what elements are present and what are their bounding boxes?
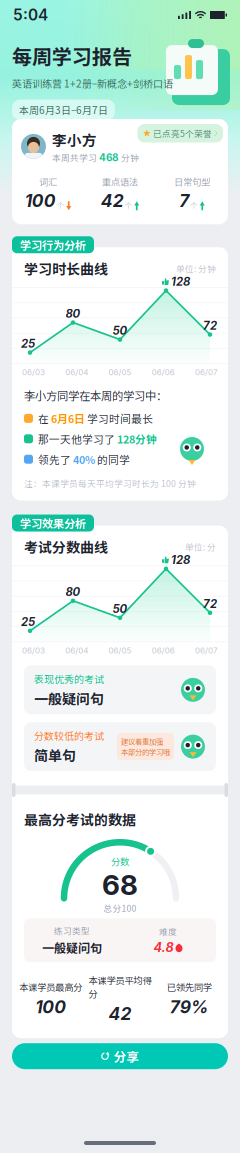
staticText: 英语训练营 1+2册–新概念+剑桥口语 xyxy=(12,76,173,90)
staticText: 06/05 xyxy=(108,367,131,377)
staticText: 学习时间最长 xyxy=(85,411,153,426)
staticText: 总分100 xyxy=(103,902,136,914)
staticText: 42 xyxy=(108,1003,131,1024)
staticText: 468 xyxy=(99,151,119,164)
staticText: 40% xyxy=(73,451,95,467)
staticText: 单位: 分钟 xyxy=(176,262,216,275)
staticText: 06/04 xyxy=(65,646,88,655)
staticText: 分数 xyxy=(111,854,129,868)
staticText: 25 xyxy=(21,337,35,350)
staticText: 日常句型 xyxy=(174,175,210,188)
staticText: 个 xyxy=(125,199,132,210)
staticText: 128分钟 xyxy=(117,431,157,446)
staticText: 学习行为分析 xyxy=(20,237,86,253)
staticText: 考试分数曲线 xyxy=(24,536,108,557)
staticText: 重点语法 xyxy=(102,175,138,188)
staticText: 最高分考试的数据 xyxy=(24,809,136,829)
staticText: 100 xyxy=(35,996,66,1017)
staticText: 领先了 xyxy=(38,451,73,467)
staticText: 06/03 xyxy=(22,367,45,377)
staticText: 4.8 xyxy=(153,940,173,955)
staticText: 本周共学习 xyxy=(52,151,97,164)
staticText: 分数较低的考试 xyxy=(34,728,104,743)
staticText: 06/07 xyxy=(195,367,218,377)
staticText: 68 xyxy=(102,868,138,902)
staticText: 06/06 xyxy=(152,646,175,655)
staticText: 7 xyxy=(179,190,189,211)
staticText: 表现优秀的考试 xyxy=(34,671,104,686)
staticText: 学习效果分析 xyxy=(20,515,86,531)
staticText: 100 xyxy=(25,190,56,211)
staticText: 50 xyxy=(112,602,127,616)
staticText: 难度 xyxy=(159,925,177,938)
staticText: 那一天他学习了 xyxy=(38,431,117,446)
staticText: 学习时长曲线 xyxy=(24,258,108,279)
staticText: 5:04 xyxy=(13,6,48,24)
staticText: 80 xyxy=(65,307,80,320)
staticText: 06/06 xyxy=(152,367,175,377)
staticText: 注：本课学员每天平均学习时长为 100 分钟 xyxy=(24,477,196,489)
staticText: 72 xyxy=(203,319,217,332)
staticText: 06/07 xyxy=(195,646,218,655)
staticText: 已领先同学 xyxy=(167,980,212,993)
staticText: 在 xyxy=(38,411,51,426)
staticText: 6月6日 xyxy=(51,411,85,426)
staticText: 词汇 xyxy=(39,175,57,188)
staticText: 06/04 xyxy=(65,367,88,377)
staticText: 80 xyxy=(65,585,80,599)
staticText: 分享 xyxy=(113,1047,139,1065)
staticText: 本部分的学习哦 xyxy=(121,747,170,757)
staticText: 72 xyxy=(203,597,217,611)
button[interactable]: 分享 xyxy=(0,1043,240,1069)
staticText: 个 xyxy=(57,199,64,210)
staticText: 李小方 xyxy=(52,129,97,150)
staticText: 一般疑问句 xyxy=(42,939,102,956)
staticText: 25 xyxy=(21,615,35,629)
staticText: 06/03 xyxy=(22,646,45,655)
staticText: 128 xyxy=(171,275,190,288)
staticText: 建议着重加强 xyxy=(121,736,163,747)
staticText: 已点亮5个荣誉 xyxy=(153,127,212,139)
staticText: 本课学员平均得分 xyxy=(88,973,151,1000)
staticText: 42 xyxy=(101,190,124,211)
staticText: 本课学员最高分 xyxy=(19,980,82,993)
staticText: 06/05 xyxy=(108,646,131,655)
staticText: 练习类型 xyxy=(54,924,90,937)
staticText: 79% xyxy=(170,996,209,1017)
staticText: 128 xyxy=(171,553,190,567)
staticText: 的同学 xyxy=(95,451,130,467)
staticText: 本周6月3日–6月7日 xyxy=(19,102,108,117)
staticText: 一般疑问句 xyxy=(34,688,104,708)
staticText: 分钟 xyxy=(121,151,139,164)
staticText: 50 xyxy=(112,324,127,337)
staticText: 简单句 xyxy=(34,745,76,765)
staticText: 单位: 分 xyxy=(185,540,216,553)
staticText: 李小方同学在本周的学习中： xyxy=(24,387,167,404)
staticText: 每周学习报告 xyxy=(12,41,132,70)
staticText: 个 xyxy=(190,199,197,210)
button[interactable]: 已点亮5个荣誉 xyxy=(137,124,223,142)
